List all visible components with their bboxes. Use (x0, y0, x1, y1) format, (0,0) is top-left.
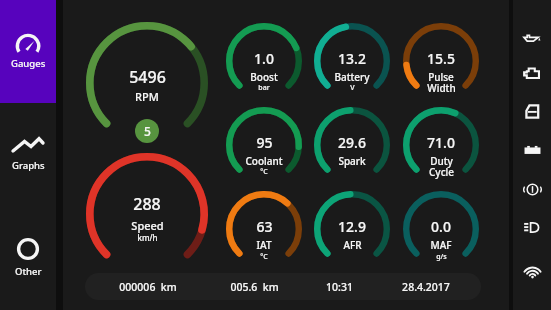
button[interactable]: Other (0, 207, 56, 310)
button[interactable] (86, 22, 208, 144)
staticText: 5 (144, 123, 151, 139)
button[interactable] (86, 153, 208, 275)
button[interactable]: 5 (135, 119, 159, 143)
staticText: 10:31 (326, 280, 353, 294)
button[interactable] (226, 23, 302, 99)
staticText: Battery (334, 70, 370, 84)
button[interactable] (314, 23, 390, 99)
staticText: Spark (338, 154, 366, 168)
staticText: °C (260, 252, 268, 262)
button[interactable] (403, 107, 479, 183)
staticText: bar (258, 83, 270, 93)
button[interactable] (226, 107, 302, 183)
button[interactable]: Brake (513, 175, 551, 203)
button[interactable]: Gauges (0, 0, 56, 103)
button[interactable] (85, 273, 481, 300)
staticText: MAF (430, 238, 452, 252)
staticText: Pulse (428, 70, 454, 84)
staticText: Other (15, 265, 42, 278)
staticText: °C (260, 167, 268, 177)
staticText: 0.0 (431, 217, 451, 236)
button[interactable] (314, 107, 390, 183)
button[interactable]: Door open (513, 97, 551, 125)
staticText: 63 (256, 217, 273, 236)
staticText: 000006 km (119, 280, 177, 294)
staticText: Width (427, 81, 456, 95)
staticText: Gauges (11, 57, 46, 70)
staticText: V (350, 83, 355, 93)
staticText: Duty (430, 154, 453, 168)
staticText: 1.0 (254, 49, 274, 68)
staticText: 13.2 (338, 49, 366, 68)
staticText: 28.4.2017 (402, 280, 450, 294)
staticText: 12.9 (338, 217, 366, 236)
button[interactable] (226, 191, 302, 267)
staticText: km/h (137, 232, 158, 243)
button[interactable] (403, 191, 479, 267)
button[interactable]: Oil pressure (513, 24, 551, 52)
button[interactable]: Battery (513, 136, 551, 164)
button[interactable]: Headlights (513, 213, 551, 241)
button[interactable] (314, 191, 390, 267)
staticText: Graphs (12, 159, 45, 172)
staticText: RPM (135, 89, 159, 104)
staticText: Coolant (245, 154, 283, 168)
staticText: g/s (436, 252, 447, 262)
staticText: 95 (256, 133, 273, 152)
staticText: 29.6 (338, 133, 366, 152)
staticText: 71.0 (427, 133, 455, 152)
button[interactable]: Check engine (513, 59, 551, 87)
staticText: AFR (343, 238, 362, 252)
staticText: 15.5 (427, 49, 455, 68)
staticText: 005.6 km (230, 280, 279, 294)
button[interactable] (403, 23, 479, 99)
staticText: 288 (133, 193, 161, 215)
button[interactable]: Wifi (513, 258, 551, 286)
button[interactable]: Graphs (0, 103, 56, 206)
staticText: 5496 (129, 66, 166, 88)
staticText: Speed (131, 218, 164, 233)
staticText: Boost (250, 70, 278, 84)
staticText: Cycle (429, 165, 454, 179)
staticText: IAT (256, 238, 272, 252)
